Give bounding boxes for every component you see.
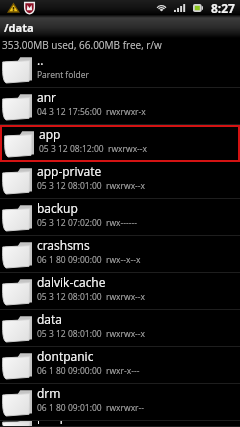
staticText: 06 1 80 09:00:00 rwx--x--x — [37, 254, 141, 266]
staticText: app — [39, 126, 61, 142]
staticText: 05 3 12 08:12:00 rwxrwx--x — [39, 143, 148, 155]
button[interactable]: app — [0, 125, 240, 162]
staticText: 05 3 12 08:01:00 rwxrwx--x — [37, 328, 146, 340]
staticText: /data — [4, 20, 34, 35]
staticText: 06 1 80 09:01:00 rwxrwxr-- — [37, 402, 145, 414]
staticText: backup — [37, 200, 78, 216]
button[interactable]: dontpanic — [0, 347, 240, 384]
button[interactable]: crashsms — [0, 236, 240, 273]
staticText: 05 3 12 07:02:00 rwx------ — [37, 217, 137, 229]
staticText: crashsms — [37, 237, 90, 253]
staticText: 8:27 — [211, 0, 235, 15]
staticText: anr — [37, 89, 56, 105]
button[interactable]: .. — [0, 51, 240, 88]
button[interactable]: anr — [0, 88, 240, 125]
button[interactable]: backup — [0, 199, 240, 236]
button[interactable]: drm — [0, 384, 240, 421]
staticText: dalvik-cache — [37, 274, 106, 290]
staticText: 353.00MB used, 66.00MB free, r/w — [2, 38, 162, 51]
staticText: 06 1 80 09:00:00 rwxr-x--- — [37, 365, 140, 377]
staticText: data — [37, 311, 62, 327]
staticText: Parent folder — [37, 69, 89, 81]
staticText: 05 3 12 08:01:00 rwxrwx--x — [37, 180, 146, 192]
staticText: 05 3 12 08:01:00 rwxrwx--x — [37, 291, 146, 303]
button[interactable]: data — [0, 310, 240, 347]
staticText: local — [37, 418, 63, 424]
staticText: dontpanic — [37, 348, 94, 364]
staticText: 04 3 12 17:56:00 rwxrwxr-x — [37, 106, 146, 118]
staticText: .. — [37, 52, 44, 68]
button[interactable]: dalvik-cache — [0, 273, 240, 310]
staticText: drm — [37, 385, 61, 401]
button[interactable]: app-private — [0, 162, 240, 199]
staticText: app-private — [37, 163, 102, 179]
button[interactable]: local — [0, 421, 240, 427]
